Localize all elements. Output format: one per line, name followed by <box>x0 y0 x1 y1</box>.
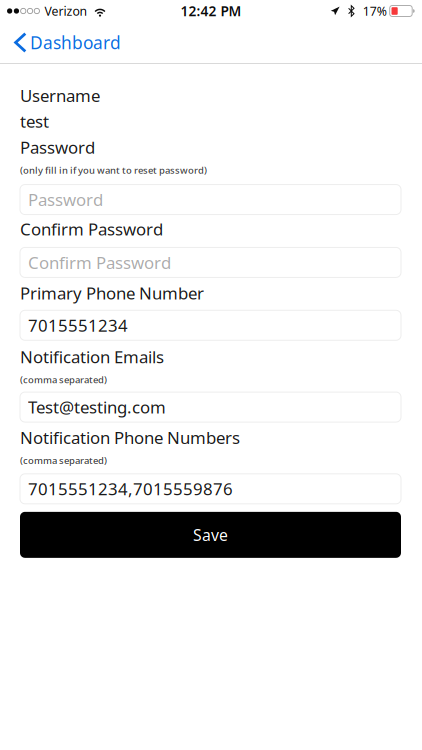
button[interactable]: 7015551234 <box>20 310 401 340</box>
staticText: Save <box>193 524 228 545</box>
staticText: Verizon <box>44 3 87 19</box>
button[interactable]: Password <box>20 184 401 214</box>
staticText: Password <box>28 188 103 211</box>
button[interactable]: 7015551234,7015559876 <box>20 474 401 504</box>
button[interactable]: Dashboard <box>0 22 131 63</box>
staticText: (comma separated) <box>20 373 107 386</box>
button[interactable]: Save <box>20 512 401 558</box>
staticText: 12:42 PM <box>180 2 241 20</box>
staticText: 7015551234 <box>28 314 128 337</box>
staticText: (only fill in if you want to reset passw… <box>20 164 207 176</box>
staticText: Username <box>20 84 100 107</box>
staticText: Dashboard <box>30 31 121 54</box>
staticText: 17% <box>363 3 387 19</box>
staticText: test <box>20 110 49 133</box>
staticText: Primary Phone Number <box>20 281 204 304</box>
staticText: Confirm Password <box>28 251 171 274</box>
staticText: Test@testing.com <box>28 396 166 418</box>
staticText: 7015551234,7015559876 <box>28 477 233 500</box>
staticText: Confirm Password <box>20 217 163 240</box>
staticText: Notification Emails <box>20 345 164 368</box>
button[interactable]: Test@testing.com <box>20 392 401 422</box>
staticText: Notification Phone Numbers <box>20 426 240 449</box>
button[interactable]: Confirm Password <box>20 247 401 277</box>
staticText: Password <box>20 136 95 159</box>
staticText: (comma separated) <box>20 454 107 467</box>
